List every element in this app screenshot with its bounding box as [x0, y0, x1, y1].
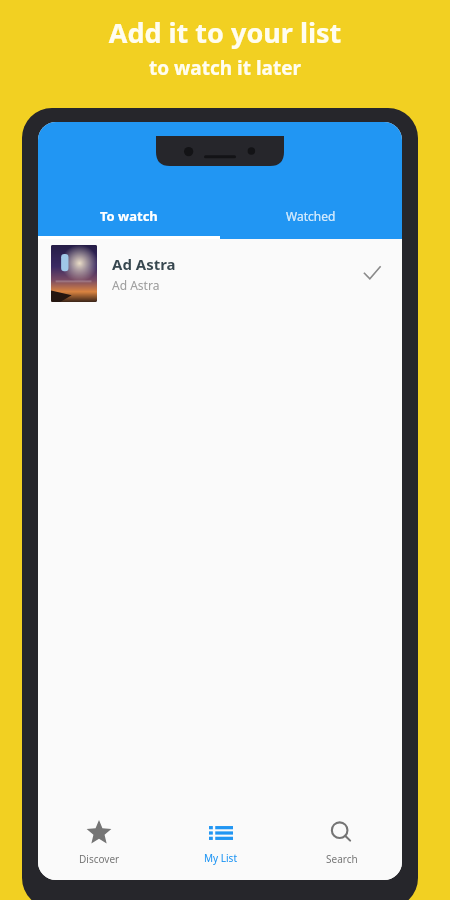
staticText: Ad Astra [112, 254, 176, 274]
staticText: Discover [79, 852, 120, 866]
staticText: Watched [286, 208, 336, 224]
button[interactable]: To watch [38, 193, 220, 239]
staticText: To watch [100, 207, 158, 225]
staticText: Search [326, 852, 358, 866]
button[interactable]: Ad Astra [38, 239, 402, 307]
button[interactable]: Watched [220, 193, 402, 239]
button[interactable]: My List [160, 806, 281, 880]
staticText: to watch it later [0, 55, 450, 81]
staticText: Ad Astra [112, 277, 160, 293]
staticText: My List [204, 851, 237, 865]
button[interactable]: Mark as watched [355, 256, 389, 290]
button[interactable]: Search [281, 806, 402, 880]
staticText: Add it to your list [0, 14, 450, 51]
button[interactable]: Discover [38, 806, 160, 880]
